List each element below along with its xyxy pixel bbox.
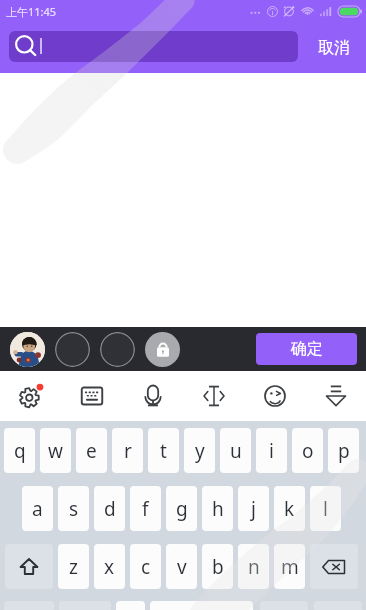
button[interactable]: e xyxy=(76,428,107,473)
staticText: k xyxy=(284,496,295,522)
staticText: b xyxy=(212,554,224,580)
staticText: i xyxy=(269,438,274,464)
staticText: y xyxy=(195,438,205,464)
staticText: w xyxy=(48,438,63,464)
staticText: p xyxy=(338,438,350,464)
button[interactable]: t xyxy=(148,428,179,473)
button[interactable]: Emoji xyxy=(244,371,305,421)
button[interactable]: Search xyxy=(9,31,298,62)
button[interactable]: Comma xyxy=(116,601,145,610)
button[interactable]: h xyxy=(202,486,233,531)
staticText: u xyxy=(230,438,242,464)
button[interactable]: v xyxy=(166,544,197,589)
staticText: t xyxy=(160,438,167,464)
button[interactable]: o xyxy=(292,428,323,473)
button[interactable]: Shift xyxy=(5,544,53,589)
button[interactable]: Hide keyboard xyxy=(305,371,366,421)
button[interactable]: Voice input xyxy=(122,371,183,421)
button[interactable]: m xyxy=(274,544,305,589)
button[interactable]: a xyxy=(22,486,53,531)
button[interactable]: Your avatar xyxy=(10,332,45,367)
button[interactable]: z xyxy=(58,544,89,589)
staticText: g xyxy=(176,496,188,522)
button[interactable]: Space xyxy=(150,601,253,610)
staticText: a xyxy=(32,496,43,522)
button[interactable]: Settings xyxy=(0,371,61,421)
button[interactable]: u xyxy=(220,428,251,473)
staticText: m xyxy=(281,554,299,580)
staticText: j xyxy=(251,496,256,522)
staticText: o xyxy=(302,438,314,464)
staticText: s xyxy=(69,496,79,522)
staticText: l xyxy=(323,496,328,522)
button[interactable]: Empty slot xyxy=(100,332,135,367)
button[interactable]: 确定 xyxy=(256,333,357,365)
button[interactable]: k xyxy=(274,486,305,531)
button[interactable]: l xyxy=(310,486,341,531)
button[interactable]: w xyxy=(40,428,71,473)
button[interactable]: i xyxy=(256,428,287,473)
staticText: f xyxy=(142,496,149,522)
button[interactable]: x xyxy=(94,544,125,589)
staticText: e xyxy=(86,438,97,464)
button[interactable]: 取消 xyxy=(302,22,366,73)
button[interactable]: r xyxy=(112,428,143,473)
button[interactable]: c xyxy=(130,544,161,589)
button[interactable]: Move cursor xyxy=(183,371,244,421)
staticText: x xyxy=(104,554,115,580)
staticText: z xyxy=(69,554,78,580)
staticText: h xyxy=(212,496,224,522)
button[interactable]: Keyboard xyxy=(61,371,122,421)
button[interactable]: f xyxy=(130,486,161,531)
button[interactable]: y xyxy=(184,428,215,473)
staticText: q xyxy=(14,438,26,464)
staticText: n xyxy=(248,554,260,580)
staticText: 上午11:45 xyxy=(6,4,57,19)
staticText: v xyxy=(177,554,187,580)
button[interactable]: j xyxy=(238,486,269,531)
button[interactable]: n xyxy=(238,544,269,589)
button[interactable]: b xyxy=(202,544,233,589)
button[interactable]: s xyxy=(58,486,89,531)
staticText: 确定 xyxy=(291,339,323,359)
button[interactable]: g xyxy=(166,486,197,531)
staticText: 取消 xyxy=(318,38,350,58)
button[interactable]: Empty slot xyxy=(55,332,90,367)
staticText: r xyxy=(124,438,132,464)
button[interactable]: Backspace xyxy=(310,544,358,589)
staticText: d xyxy=(104,496,116,522)
button[interactable]: q xyxy=(4,428,35,473)
button[interactable]: p xyxy=(328,428,359,473)
button[interactable]: Locked xyxy=(145,332,180,367)
button[interactable]: d xyxy=(94,486,125,531)
staticText: c xyxy=(141,554,151,580)
